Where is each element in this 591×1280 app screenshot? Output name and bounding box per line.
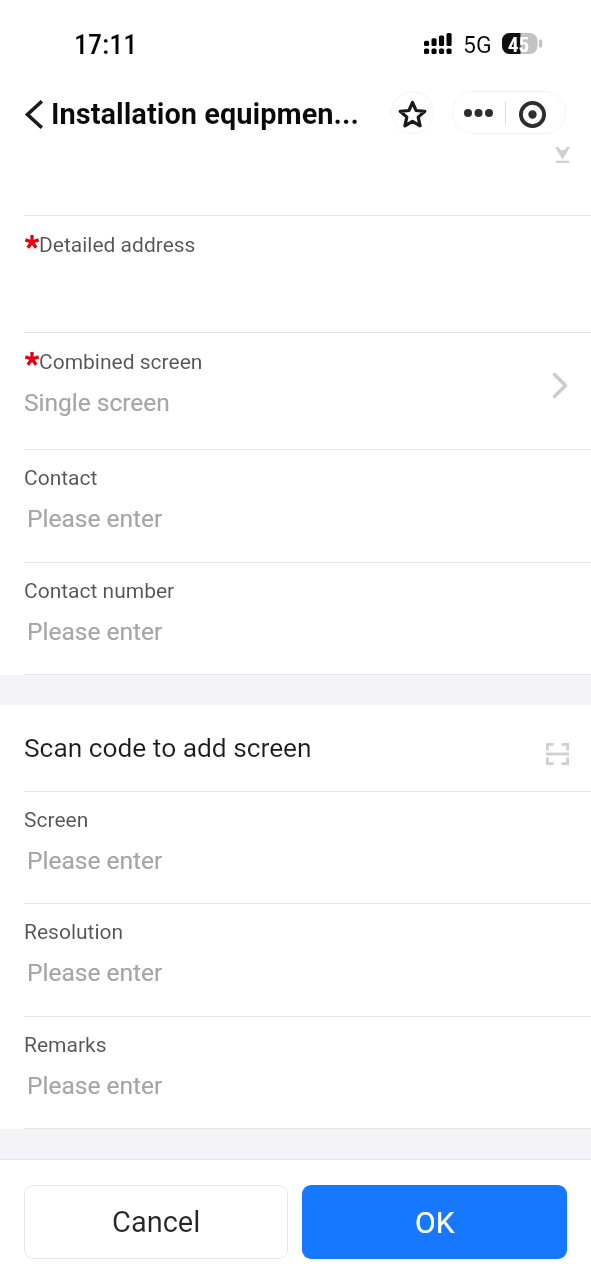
button[interactable]: Back bbox=[14, 94, 54, 134]
staticText: Please enter bbox=[27, 958, 163, 987]
staticText: Scan code to add screen bbox=[24, 733, 312, 764]
staticText: Detailed address bbox=[39, 233, 196, 258]
staticText: Combined screen bbox=[39, 350, 203, 375]
button[interactable]: More options bbox=[452, 91, 505, 134]
staticText: Please enter bbox=[27, 846, 163, 875]
button[interactable]: Cancel bbox=[24, 1185, 288, 1259]
staticText: 17:11 bbox=[74, 28, 138, 61]
staticText: Screen bbox=[24, 808, 89, 833]
button[interactable]: Record bbox=[506, 91, 566, 134]
staticText: Please enter bbox=[27, 617, 163, 646]
staticText: Please enter bbox=[27, 504, 163, 533]
button[interactable]: OK bbox=[302, 1185, 567, 1259]
staticText: Installation equipmen... bbox=[51, 97, 359, 131]
staticText: 45 bbox=[508, 33, 530, 54]
staticText: Contact bbox=[24, 466, 98, 491]
staticText: 5G bbox=[463, 32, 492, 59]
button[interactable]: Scan code bbox=[535, 728, 575, 768]
staticText: Single screen bbox=[24, 388, 170, 417]
staticText: Resolution bbox=[24, 920, 124, 945]
button[interactable]: Favourite bbox=[391, 91, 434, 134]
staticText: Cancel bbox=[112, 1205, 201, 1239]
button[interactable]: Download bbox=[543, 135, 581, 173]
staticText: Please enter bbox=[27, 1071, 163, 1100]
button[interactable]: Combined screen bbox=[0, 333, 591, 449]
staticText: Contact number bbox=[24, 579, 175, 604]
staticText: Remarks bbox=[24, 1033, 107, 1058]
staticText: OK bbox=[415, 1205, 455, 1240]
